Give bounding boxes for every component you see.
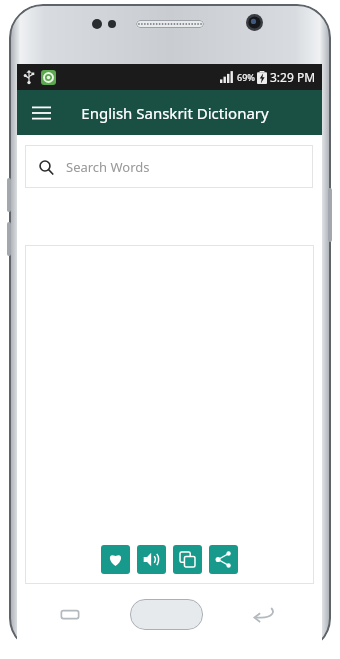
button[interactable]: Open navigation drawer [26, 98, 56, 128]
button[interactable]: Pronounce [137, 545, 166, 574]
button[interactable]: Recent apps [58, 606, 82, 624]
button[interactable]: Search Words [25, 145, 313, 188]
staticText: English Sanskrit Dictionary [81, 103, 269, 123]
button[interactable]: Home [130, 599, 203, 630]
button[interactable]: Back [252, 604, 276, 624]
staticText: 3:29 PM [270, 69, 316, 85]
button[interactable]: Share [209, 545, 238, 574]
staticText: 69% [237, 71, 255, 83]
button[interactable]: Copy [173, 545, 202, 574]
button[interactable]: Favorite [101, 545, 130, 574]
staticText: Search Words [66, 158, 150, 176]
